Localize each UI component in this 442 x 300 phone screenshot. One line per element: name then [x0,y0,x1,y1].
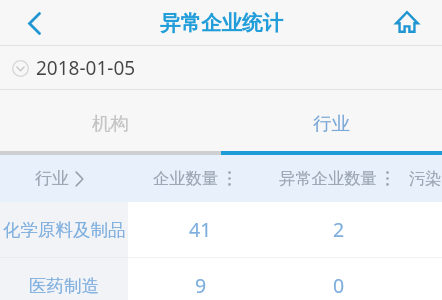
staticText: 化学原料及制品 [3,219,126,241]
staticText: 0 [333,272,345,299]
button[interactable]: 2018-01-05 [12,46,136,90]
staticText: 异常企业数量 [279,168,377,189]
button[interactable]: 医药制造 [0,258,442,300]
staticText: 异常企业统计 [160,10,283,36]
button[interactable]: 行业 [221,90,442,151]
staticText: 9 [195,272,207,299]
button[interactable]: Home [372,0,442,46]
button[interactable]: 行业 [0,155,128,202]
staticText: 机构 [92,112,129,135]
staticText: 41 [189,216,212,243]
button[interactable]: 化学原料及制品 [0,202,442,257]
button[interactable]: Back [0,0,70,46]
staticText: 企业数量 [153,168,219,189]
staticText: 2 [333,216,345,243]
staticText: 行业 [313,112,350,135]
staticText: 2018-01-05 [36,55,136,81]
staticText: 污染 [409,168,442,189]
button[interactable]: 机构 [0,90,221,151]
staticText: 行业 [35,168,69,189]
button[interactable]: 企业数量 [128,155,267,202]
staticText: 医药制造 [29,275,99,297]
button[interactable]: 异常企业数量 [267,155,408,202]
